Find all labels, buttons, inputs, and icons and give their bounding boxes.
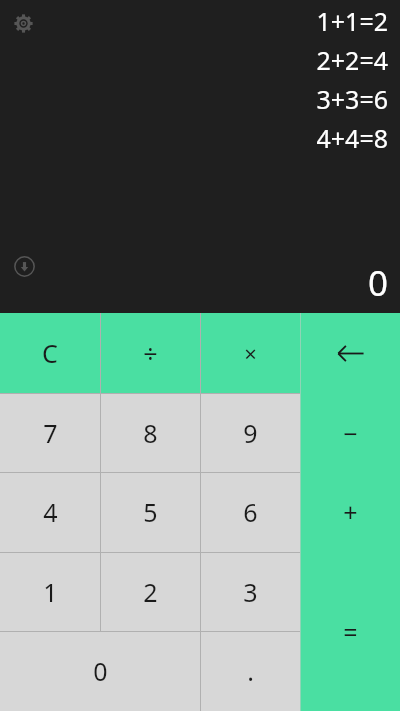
staticText: 5: [143, 495, 158, 529]
button[interactable]: 2: [100, 552, 200, 632]
button[interactable]: Save history: [9, 251, 39, 281]
staticText: 0: [93, 654, 108, 688]
staticText: 6: [243, 495, 258, 529]
button[interactable]: −: [300, 393, 400, 473]
button[interactable]: Settings: [8, 8, 38, 38]
staticText: −: [343, 416, 358, 450]
button[interactable]: 4+4=8: [316, 118, 388, 157]
staticText: ÷: [143, 336, 158, 370]
button[interactable]: 1: [0, 552, 100, 632]
staticText: 8: [143, 416, 158, 450]
staticText: 1+1=2: [316, 4, 388, 38]
button[interactable]: 8: [100, 393, 200, 473]
staticText: 2+2=4: [316, 43, 388, 77]
staticText: +: [343, 495, 358, 529]
button[interactable]: +: [300, 472, 400, 552]
button[interactable]: .: [200, 631, 300, 711]
button[interactable]: 5: [100, 472, 200, 552]
button[interactable]: 1+1=2: [316, 1, 388, 40]
staticText: 0: [367, 259, 388, 307]
button[interactable]: Backspace: [300, 313, 400, 393]
button[interactable]: 9: [200, 393, 300, 473]
staticText: 7: [43, 416, 58, 450]
staticText: .: [247, 654, 254, 688]
staticText: 1: [43, 575, 58, 609]
staticText: 3: [243, 575, 258, 609]
button[interactable]: 3+3=6: [316, 79, 388, 118]
button[interactable]: 4: [0, 472, 100, 552]
staticText: 3+3=6: [316, 82, 388, 116]
staticText: 9: [243, 416, 258, 450]
button[interactable]: C: [0, 313, 100, 393]
button[interactable]: 3: [200, 552, 300, 632]
button[interactable]: ÷: [100, 313, 200, 393]
staticText: 4: [43, 495, 58, 529]
staticText: =: [343, 615, 358, 649]
staticText: 2: [143, 575, 158, 609]
button[interactable]: 2+2=4: [316, 40, 388, 79]
button[interactable]: 6: [200, 472, 300, 552]
staticText: 4+4=8: [316, 121, 388, 155]
staticText: ×: [244, 338, 257, 368]
button[interactable]: 7: [0, 393, 100, 473]
staticText: C: [42, 336, 58, 370]
button[interactable]: 0: [0, 631, 200, 711]
button[interactable]: =: [300, 552, 400, 711]
button[interactable]: ×: [200, 313, 300, 393]
